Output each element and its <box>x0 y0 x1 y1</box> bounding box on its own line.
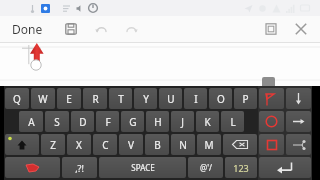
staticText: SPACE <box>131 162 155 173</box>
button[interactable]: L <box>221 111 244 132</box>
staticText: X <box>76 138 82 152</box>
button[interactable]: SPACE <box>99 157 186 178</box>
staticText: A <box>28 115 35 129</box>
button[interactable]: I <box>184 88 207 109</box>
button[interactable]: J <box>171 111 194 132</box>
staticText: R <box>92 92 99 106</box>
button[interactable] <box>259 134 284 155</box>
button[interactable]: Q <box>5 88 29 109</box>
staticText: K <box>204 115 211 129</box>
staticText: F <box>105 115 111 129</box>
button[interactable]: W <box>31 88 55 109</box>
button[interactable]: Y <box>134 88 157 109</box>
button[interactable]: F <box>96 111 119 132</box>
button[interactable]: C <box>93 134 117 155</box>
button[interactable]: Undo <box>91 19 111 39</box>
staticText: Done <box>12 21 43 37</box>
staticText: Z <box>50 138 56 152</box>
button[interactable] <box>286 134 311 155</box>
staticText: O <box>217 92 225 106</box>
button[interactable] <box>259 111 284 132</box>
staticText: V <box>128 138 134 152</box>
staticText: E <box>66 92 72 106</box>
button[interactable] <box>259 157 311 178</box>
staticText: J <box>181 115 184 129</box>
button[interactable]: Done <box>8 18 47 40</box>
staticText: M <box>204 138 214 152</box>
button[interactable]: G <box>121 111 144 132</box>
button[interactable] <box>5 134 39 155</box>
button[interactable] <box>286 111 311 132</box>
button[interactable] <box>286 88 311 109</box>
staticText: D <box>79 115 87 129</box>
button[interactable]: Z <box>41 134 65 155</box>
staticText: Q <box>13 92 21 106</box>
button[interactable]: M <box>197 134 221 155</box>
staticText: W <box>38 92 48 106</box>
button[interactable]: U <box>159 88 182 109</box>
button[interactable]: E <box>57 88 81 109</box>
staticText: ,?! <box>75 162 84 174</box>
button[interactable]: 123 <box>225 157 257 178</box>
button[interactable]: Redo <box>121 19 141 39</box>
button[interactable]: O <box>209 88 232 109</box>
button[interactable]: P <box>234 88 257 109</box>
staticText: P <box>242 92 249 106</box>
staticText: B <box>154 138 161 152</box>
button[interactable] <box>223 134 257 155</box>
staticText: L <box>230 115 236 129</box>
staticText: U <box>167 92 175 106</box>
button[interactable] <box>259 88 284 109</box>
staticText: 123 <box>233 162 249 174</box>
button[interactable]: B <box>145 134 169 155</box>
button[interactable]: H <box>146 111 169 132</box>
button[interactable]: K <box>196 111 219 132</box>
staticText: @'/ <box>200 162 212 173</box>
staticText: N <box>179 138 187 152</box>
staticText: T <box>118 92 124 106</box>
button[interactable]: Copy <box>260 18 282 40</box>
staticText: S <box>54 115 60 129</box>
button[interactable]: R <box>83 88 107 109</box>
button[interactable]: T <box>109 88 132 109</box>
button[interactable]: D <box>71 111 94 132</box>
button[interactable]: N <box>171 134 195 155</box>
staticText: I <box>194 92 198 106</box>
button[interactable]: @'/ <box>188 157 223 178</box>
button[interactable]: V <box>119 134 143 155</box>
button[interactable]: A <box>19 111 43 132</box>
button[interactable]: S <box>45 111 69 132</box>
button[interactable]: Close <box>290 18 312 40</box>
button[interactable]: ,?! <box>62 157 97 178</box>
staticText: G <box>129 115 137 129</box>
staticText: C <box>102 138 109 152</box>
button[interactable] <box>5 157 60 178</box>
staticText: Y <box>143 92 149 106</box>
button[interactable]: Keyboard handle <box>262 77 275 86</box>
button[interactable]: X <box>67 134 91 155</box>
staticText: H <box>154 115 162 129</box>
button[interactable]: Save <box>61 19 81 39</box>
